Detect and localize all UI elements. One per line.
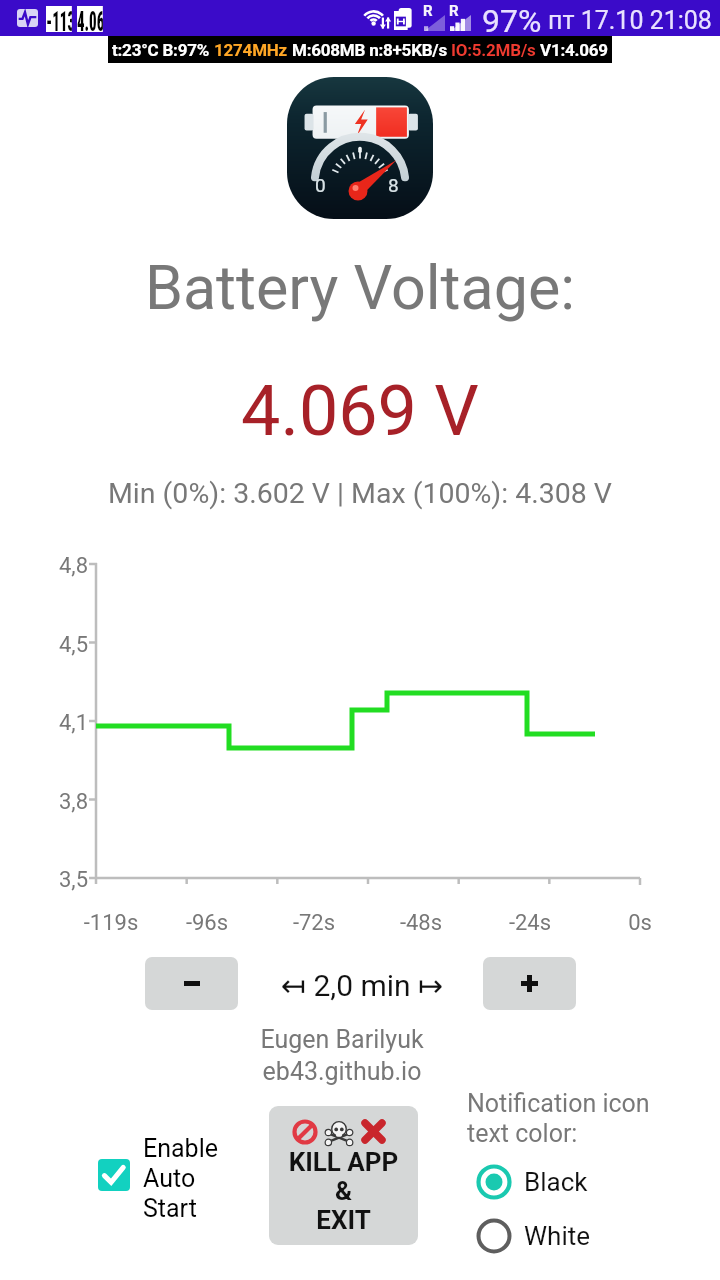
staticText: -48s — [371, 910, 471, 936]
staticText: Notification icon text color: — [467, 1089, 650, 1148]
staticText: ↤ 2,0 min ↦ — [242, 968, 482, 1003]
staticText: 4,5 — [8, 632, 88, 658]
staticText: 1274MHz — [214, 40, 288, 60]
staticText: KILL APP & EXIT — [269, 1147, 418, 1235]
staticText: -72s — [264, 910, 364, 936]
staticText: 8 — [388, 174, 399, 196]
staticText: t:23°C B:97% — [112, 40, 214, 60]
staticText: -96s — [157, 910, 257, 936]
staticText: 4,1 — [8, 710, 88, 736]
staticText: пт 17.10 21:08 — [548, 6, 712, 35]
staticText: White — [524, 1221, 591, 1251]
staticText: 4.069 V — [0, 370, 720, 452]
staticText: 97% — [482, 2, 542, 38]
staticText: -113 — [46, 6, 72, 32]
button[interactable]: Black — [472, 1160, 588, 1204]
staticText: Eugen Barilyuk eb43.github.io — [0, 1025, 702, 1086]
staticText: V1:4.069 — [536, 40, 608, 60]
button[interactable]: Decrease interval — [145, 957, 238, 1010]
staticText: -24s — [480, 910, 580, 936]
button[interactable]: Increase interval — [483, 957, 576, 1010]
staticText: 0s — [590, 910, 690, 936]
staticText: Black — [524, 1167, 588, 1197]
staticText: 4,8 — [8, 553, 88, 579]
staticText: R — [423, 2, 433, 20]
button[interactable]: Enable Auto Start — [90, 1134, 260, 1223]
staticText: Battery Voltage: — [0, 252, 720, 323]
staticText: 3,8 — [8, 789, 88, 815]
staticText: IO:5.2MB/s — [451, 40, 536, 60]
staticText: Enable Auto Start — [143, 1134, 218, 1223]
staticText: -119s — [61, 910, 161, 936]
staticText: 3,5 — [8, 867, 88, 893]
staticText: 4.06 — [77, 6, 103, 32]
staticText: 0 — [315, 174, 326, 196]
staticText: M:608MB n:8+5KB/s — [288, 40, 451, 60]
staticText: R — [449, 2, 459, 20]
staticText: Min (0%): 3.602 V | Max (100%): 4.308 V — [0, 477, 720, 510]
button[interactable]: KILL APP & EXIT — [269, 1106, 418, 1245]
button[interactable]: White — [472, 1214, 591, 1258]
